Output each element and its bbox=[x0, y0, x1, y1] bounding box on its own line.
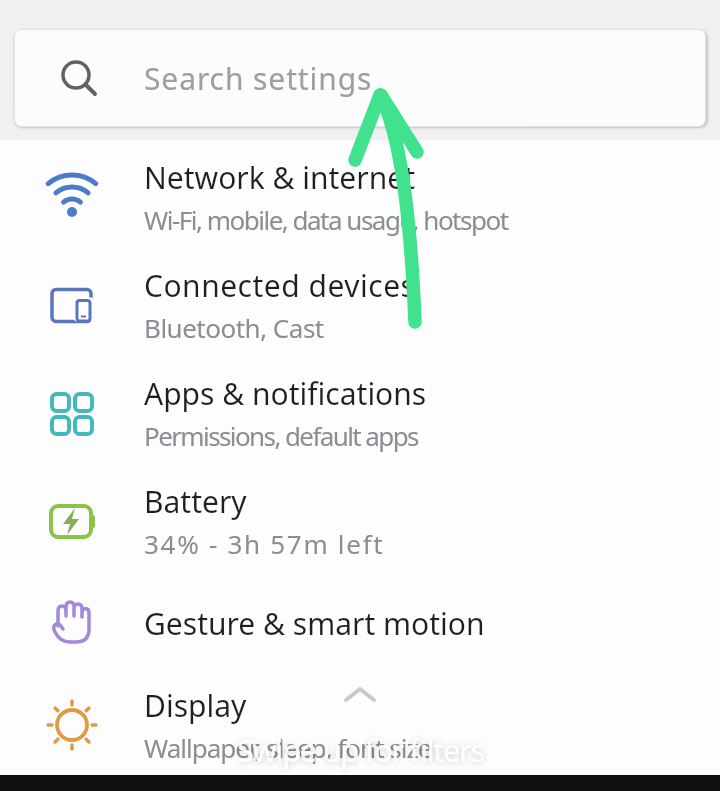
staticText: Swipe up for filters bbox=[237, 729, 484, 771]
staticText: Apps & notifications bbox=[144, 373, 427, 414]
staticText: Display bbox=[144, 685, 247, 726]
button[interactable]: Network & internet bbox=[0, 143, 720, 251]
button[interactable]: Connected devices bbox=[0, 251, 720, 359]
staticText: Gesture & smart motion bbox=[144, 603, 485, 644]
button[interactable]: Gesture & smart motion bbox=[0, 575, 720, 671]
staticText: Permissions, default apps bbox=[144, 418, 418, 453]
staticText: Network & internet bbox=[144, 157, 415, 198]
staticText: Connected devices bbox=[144, 265, 416, 306]
staticText: 34% - 3h 57m left bbox=[144, 526, 385, 561]
staticText: Bluetooth, Cast bbox=[144, 310, 324, 345]
staticText: Wi-Fi, mobile, data usage, hotspot bbox=[144, 202, 508, 237]
button[interactable]: Display bbox=[0, 671, 720, 779]
button[interactable]: Apps & notifications bbox=[0, 359, 720, 467]
staticText: Battery bbox=[144, 481, 247, 522]
staticText: Wallpaper, sleep, font size bbox=[144, 730, 432, 765]
staticText: Search settings bbox=[144, 58, 373, 99]
button[interactable]: Battery bbox=[0, 467, 720, 575]
button[interactable]: Search settings bbox=[14, 29, 706, 127]
